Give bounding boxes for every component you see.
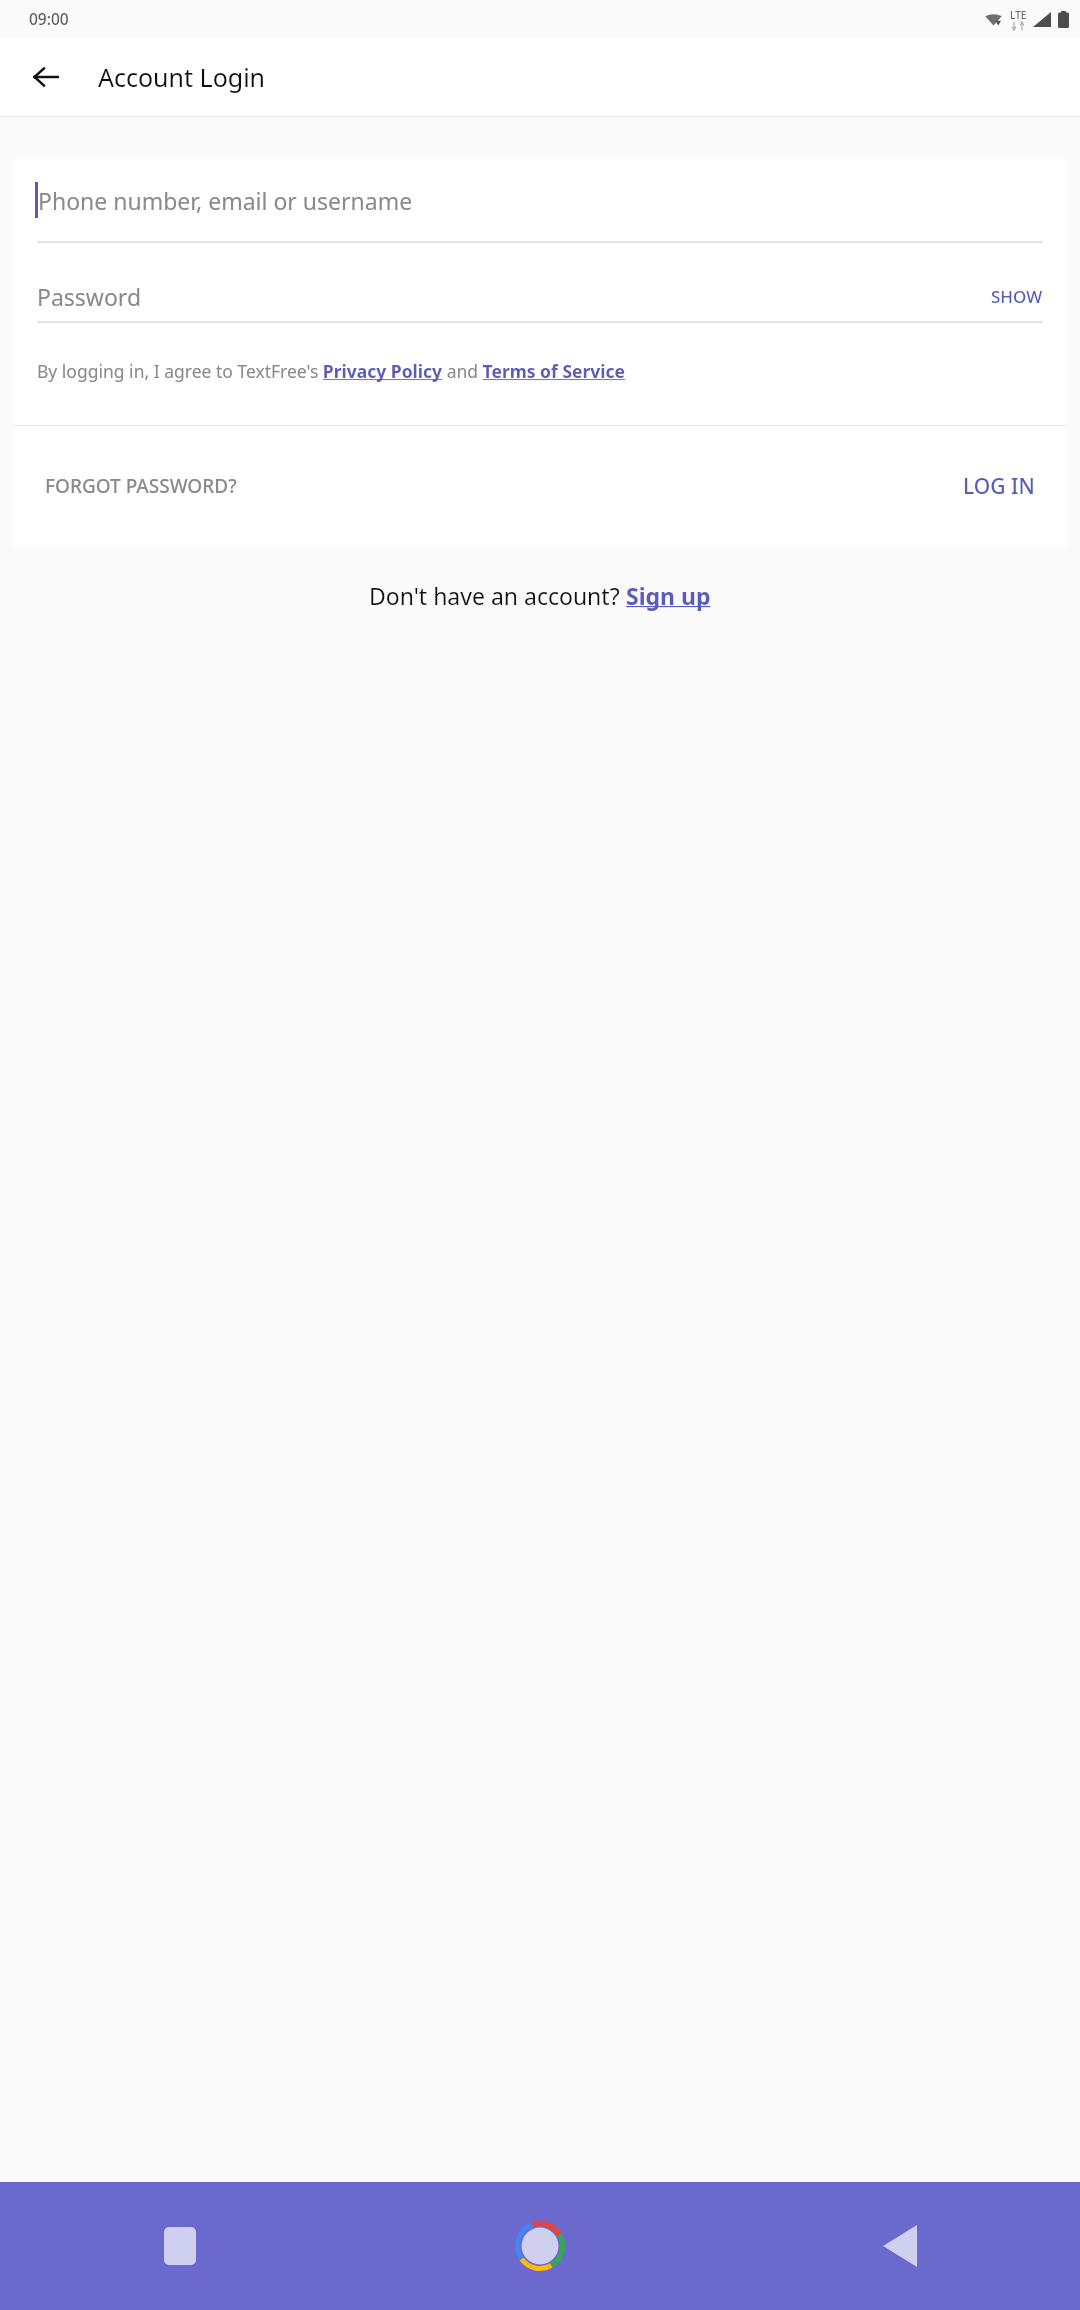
button[interactable]: Don't have an account? <box>361 572 719 619</box>
staticText: 09:00 <box>29 8 69 29</box>
button[interactable]: Back <box>720 2182 1080 2310</box>
staticText: SHOW <box>991 285 1043 308</box>
staticText: LOG IN <box>963 472 1035 501</box>
staticText: Sign up <box>626 580 711 611</box>
button[interactable]: Password <box>13 271 1067 321</box>
button[interactable]: LOG IN <box>955 460 1043 513</box>
staticText: Don't have an account? <box>369 580 626 611</box>
button[interactable]: FORGOT PASSWORD? <box>37 461 245 511</box>
staticText: LTE <box>1010 8 1027 22</box>
button[interactable]: SHOW <box>981 279 1053 314</box>
staticText: Phone number, email or username <box>38 185 413 216</box>
button[interactable]: Back <box>22 53 70 101</box>
button[interactable]: Home <box>360 2182 720 2310</box>
staticText: By logging in, I agree to TextFree's Pri… <box>37 359 625 383</box>
button[interactable]: Recent apps <box>0 2182 360 2310</box>
button[interactable]: Phone number, email or username <box>13 159 1067 241</box>
staticText: Account Login <box>98 60 266 94</box>
staticText: Password <box>37 281 142 312</box>
staticText: FORGOT PASSWORD? <box>45 473 237 499</box>
